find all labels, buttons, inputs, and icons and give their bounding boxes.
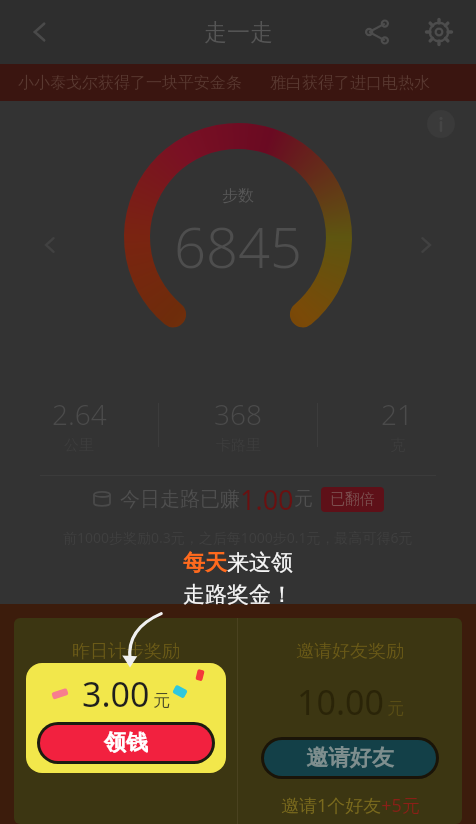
staticText: 连续3天就可翻倍哦! (46, 751, 206, 776)
staticText: 邀请1个好友+5元 (281, 793, 420, 818)
button[interactable]: 领钱 (40, 725, 212, 761)
staticText: 领钱 (104, 729, 148, 757)
button[interactable]: Info (424, 107, 458, 141)
staticText: 6845 (174, 208, 302, 284)
button[interactable]: Share (354, 9, 400, 55)
staticText: 已翻倍 (330, 490, 375, 509)
button[interactable]: Back (16, 8, 64, 56)
staticText: 雅白获得了进口电热水 (270, 73, 430, 93)
staticText: 走路奖金！ (183, 581, 293, 609)
button[interactable]: 368 (159, 395, 317, 455)
button[interactable]: 今日走路已赚 (0, 476, 476, 522)
button[interactable]: 3.00 (26, 663, 226, 773)
staticText: 邀请好友 (306, 744, 394, 772)
button[interactable]: 邀请好友 (264, 740, 436, 776)
staticText: 368 (214, 395, 262, 433)
staticText: 元 (387, 698, 404, 719)
staticText: 元 (153, 690, 170, 711)
staticText: 2.64 (52, 395, 107, 433)
staticText: 小小泰戈尔获得了一块平安金条 (18, 73, 242, 93)
staticText: 3.00 (82, 671, 150, 717)
staticText: 今日走路已赚 (120, 487, 240, 512)
staticText: 昨日计步奖励 (72, 640, 180, 663)
staticText: 1.00 (240, 481, 294, 518)
staticText: 走一走 (204, 18, 273, 47)
staticText: 每天来这领 (183, 549, 293, 577)
staticText: 元 (294, 487, 313, 511)
button[interactable]: 小小泰戈尔获得了一块平安金条 (0, 64, 476, 101)
staticText: 21 (381, 395, 413, 433)
staticText: 前1000步奖励0.3元，之后每1000步0.1元，最高可得6元 (63, 528, 413, 547)
staticText: 步数 (222, 186, 254, 206)
button[interactable]: 邀请好友奖励 (238, 618, 462, 824)
staticText: 邀请好友奖励 (296, 640, 404, 663)
staticText: 10.00 (297, 679, 384, 725)
button[interactable]: Settings (416, 9, 462, 55)
button[interactable]: 昨日计步奖励 (14, 618, 237, 824)
